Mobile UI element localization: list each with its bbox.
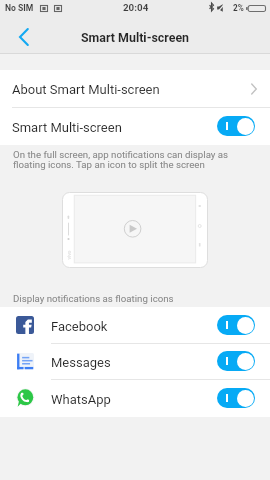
- button[interactable]: Smart Multi-screen: [0, 107, 270, 145]
- staticText: Smart Multi-screen: [12, 120, 122, 135]
- button[interactable]: Toggle on: [217, 388, 255, 408]
- staticText: vivo: [65, 250, 71, 259]
- button[interactable]: Back: [6, 22, 40, 50]
- button[interactable]: Messages: [0, 343, 270, 379]
- button[interactable]: Toggle on: [217, 315, 255, 335]
- staticText: About Smart Multi-screen: [12, 82, 160, 97]
- button[interactable]: Toggle on: [217, 351, 255, 371]
- staticText: Facebook: [51, 319, 108, 334]
- staticText: 20:04: [123, 2, 149, 13]
- staticText: Messages: [51, 355, 111, 370]
- staticText: On the full screen, app notifications ca…: [13, 149, 229, 171]
- staticText: 2%: [233, 3, 244, 13]
- staticText: Display notifications as floating icons: [13, 293, 174, 304]
- button[interactable]: WhatsApp: [0, 379, 270, 417]
- staticText: Smart Multi-screen: [81, 30, 190, 45]
- button[interactable]: Facebook: [0, 307, 270, 343]
- button[interactable]: About Smart Multi-screen: [0, 70, 270, 107]
- staticText: No SIM: [5, 3, 34, 13]
- button[interactable]: Toggle on: [217, 116, 255, 136]
- staticText: WhatsApp: [51, 392, 111, 407]
